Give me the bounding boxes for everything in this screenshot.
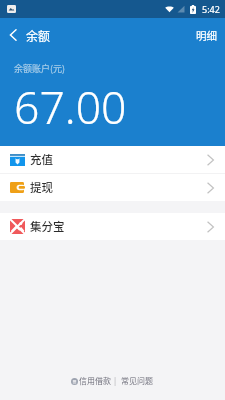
- staticText: 集分宝: [30, 218, 65, 235]
- staticText: 充值: [30, 151, 53, 168]
- button[interactable]: 常见问题: [117, 372, 157, 390]
- staticText: 常见问题: [121, 375, 153, 387]
- staticText: |: [114, 375, 117, 387]
- button[interactable]: 充值: [0, 146, 225, 173]
- button[interactable]: 提现: [0, 174, 225, 201]
- other: Back: [9, 29, 17, 41]
- staticText: 余额: [26, 27, 51, 44]
- button[interactable]: Credit loan: [68, 372, 114, 390]
- staticText: 信用借款: [79, 375, 111, 387]
- other: Credit loan: [71, 378, 78, 385]
- staticText: 67.00: [14, 76, 127, 137]
- button[interactable]: 明细: [188, 22, 225, 47]
- button[interactable]: Back: [0, 26, 59, 43]
- staticText: 明细: [196, 28, 217, 43]
- button[interactable]: 集分宝: [0, 213, 225, 240]
- staticText: 5:42: [202, 3, 220, 15]
- staticText: 提现: [30, 179, 53, 196]
- staticText: 余额账户(元): [14, 62, 66, 75]
